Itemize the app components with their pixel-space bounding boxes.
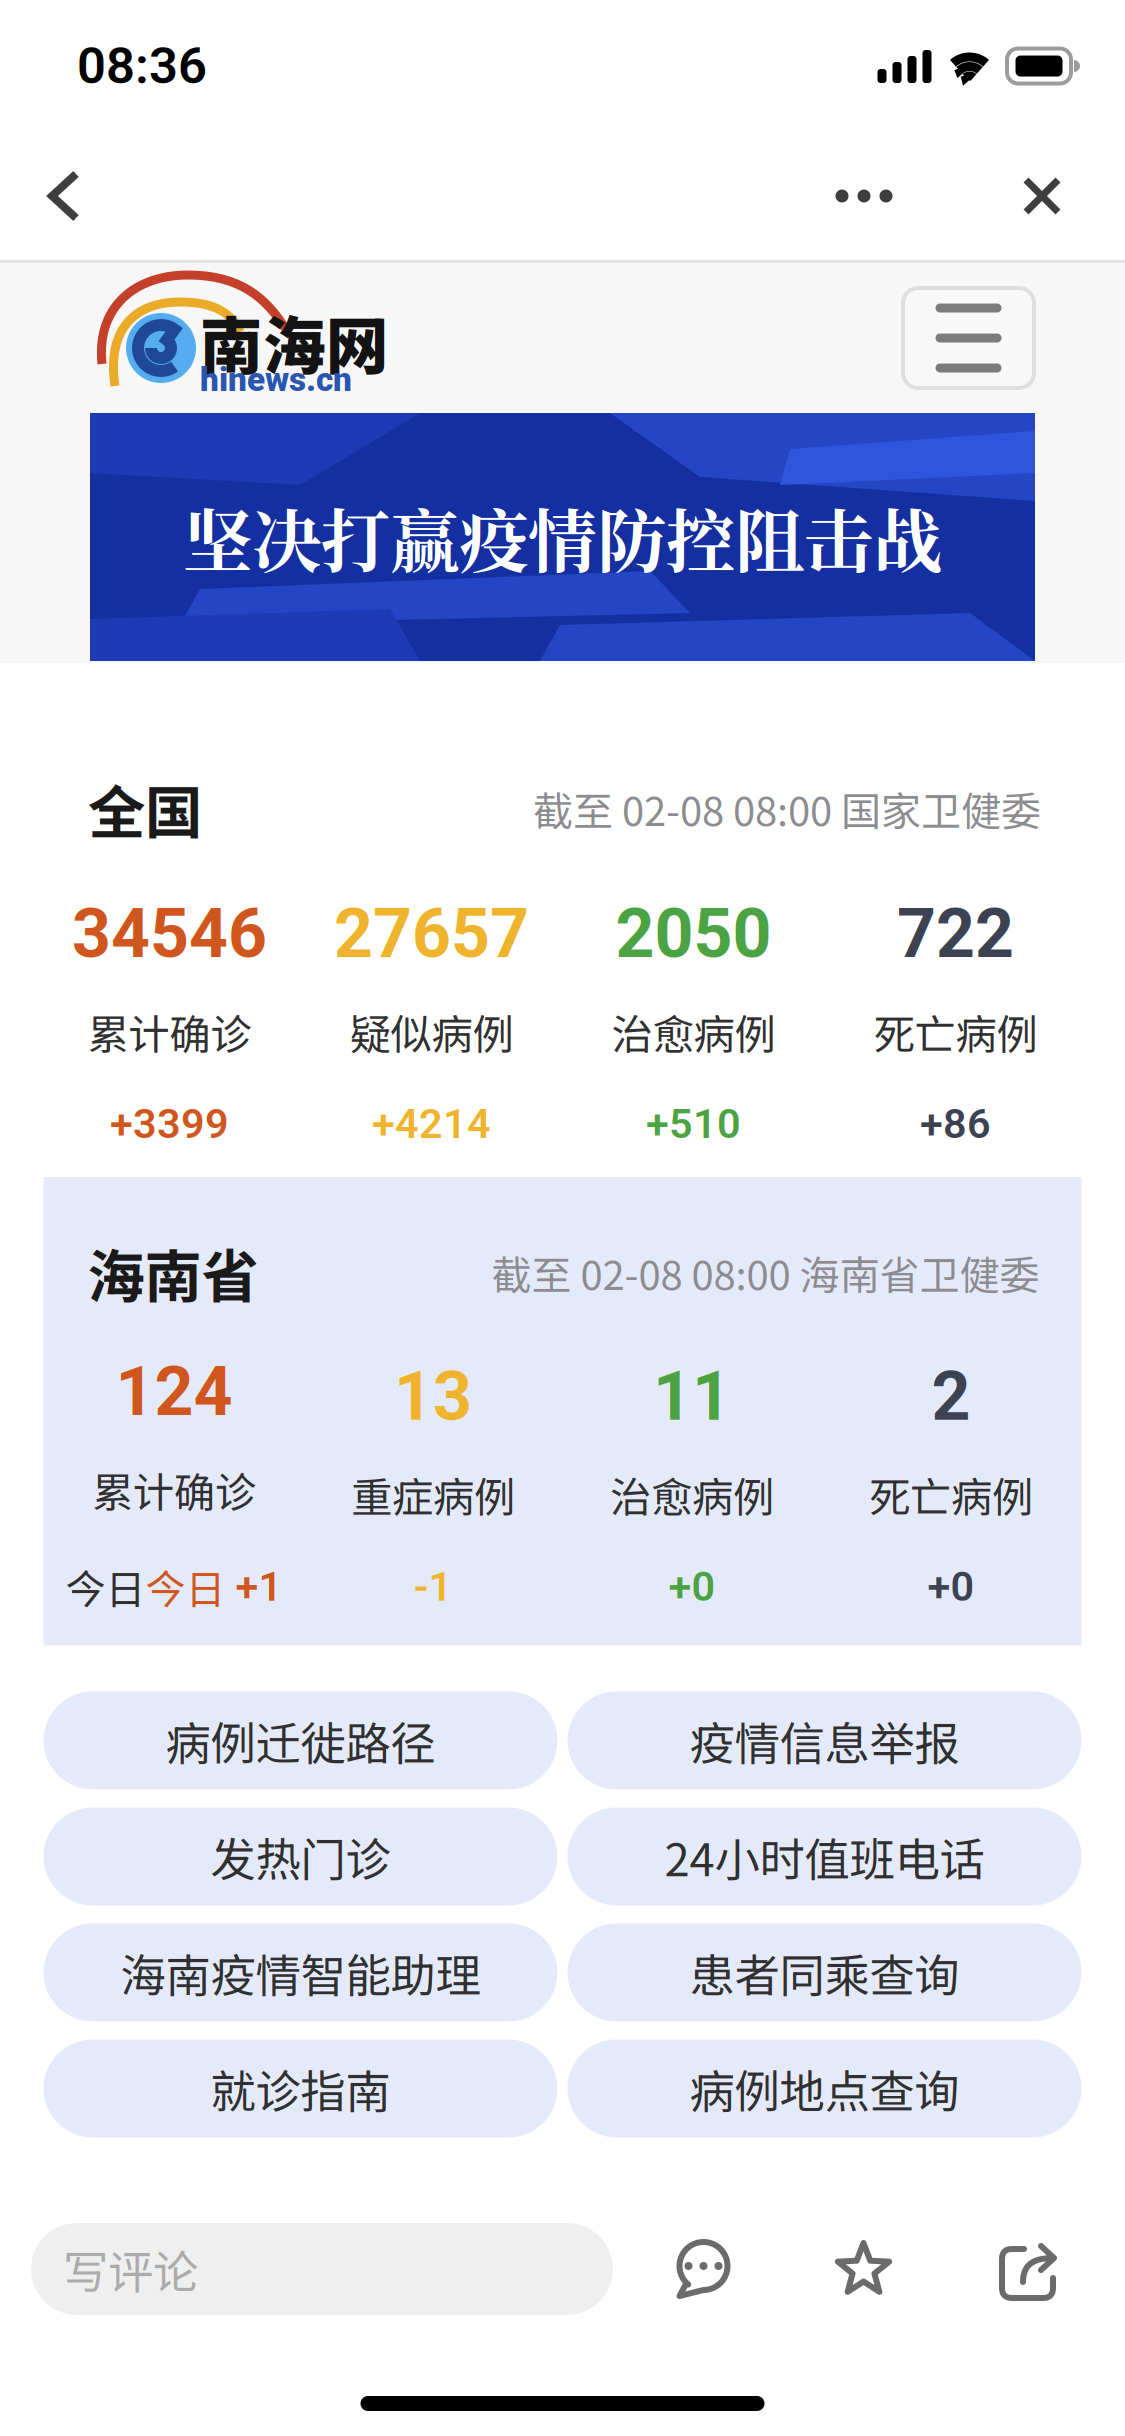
button[interactable]: Back	[16, 132, 112, 260]
button[interactable]: 病例地点查询	[567, 2039, 1081, 2137]
staticText: 截至 02-08 08:00 国家卫健委	[533, 779, 1041, 837]
staticText: 病例迁徙路径	[165, 1708, 435, 1773]
staticText: +510	[646, 1100, 741, 1148]
staticText: +0	[927, 1562, 974, 1611]
button[interactable]: 24小时值班电话	[567, 1807, 1081, 1905]
staticText: 写评论	[63, 2236, 198, 2302]
staticText: 重症病例	[351, 1464, 515, 1524]
button[interactable]: 发热门诊	[43, 1807, 557, 1905]
staticText: 2	[931, 1357, 970, 1436]
staticText: hinews.cn	[200, 360, 352, 399]
staticText: 11	[653, 1357, 731, 1436]
staticText: 2050	[615, 894, 771, 974]
staticText: 累计确诊	[92, 1460, 256, 1520]
staticText: 27657	[334, 894, 529, 974]
staticText: 24小时值班电话	[664, 1824, 984, 1889]
button[interactable]: 病例迁徙路径	[43, 1691, 557, 1789]
staticText: +1	[225, 1562, 282, 1611]
button[interactable]: More	[805, 132, 923, 260]
button[interactable]: Favorite	[821, 2223, 907, 2315]
staticText: +86	[920, 1100, 991, 1148]
staticText: +4214	[372, 1100, 491, 1148]
button[interactable]: Menu	[903, 288, 1034, 388]
staticText: 08:36	[77, 36, 207, 96]
staticText: 海南省	[87, 1231, 258, 1314]
staticText: 124	[115, 1352, 232, 1432]
button[interactable]: 疫情信息举报	[567, 1691, 1081, 1789]
staticText: +0	[668, 1562, 715, 1611]
staticText: 死亡病例	[873, 1002, 1037, 1062]
button[interactable]: 海南疫情智能助理	[43, 1923, 557, 2021]
staticText: 南海网	[200, 296, 389, 387]
staticText: 治愈病例	[610, 1464, 774, 1524]
staticText: 截至 02-08 08:00 海南省卫健委	[491, 1243, 1039, 1301]
staticText: 13	[394, 1357, 472, 1436]
staticText: 疫情信息举报	[689, 1708, 959, 1773]
staticText: 34546	[72, 894, 267, 974]
staticText: 患者同乘查询	[689, 1940, 959, 2005]
staticText: 今日	[65, 1557, 145, 1615]
button[interactable]: Close	[997, 132, 1087, 260]
staticText: 病例地点查询	[689, 2056, 959, 2121]
staticText: 累计确诊	[87, 1002, 251, 1062]
staticText: 就诊指南	[210, 2056, 390, 2121]
button[interactable]: 写评论	[31, 2223, 613, 2315]
button[interactable]: 就诊指南	[43, 2039, 557, 2137]
staticText: 死亡病例	[869, 1464, 1033, 1524]
button[interactable]: 患者同乘查询	[567, 1923, 1081, 2021]
staticText: 治愈病例	[611, 1002, 775, 1062]
staticText: 发热门诊	[210, 1824, 390, 1889]
staticText: -1	[413, 1562, 452, 1611]
staticText: 722	[897, 894, 1014, 974]
button[interactable]: Share	[985, 2223, 1071, 2315]
staticText: 权威发布｜海南省新型冠状病毒感染	[84, 2196, 772, 2258]
staticText: 疑似病例	[349, 1002, 513, 1062]
staticText: 坚决打赢疫情防控阻击战	[183, 487, 942, 587]
staticText: +3399	[110, 1100, 229, 1148]
staticText: 海南疫情智能助理	[120, 1940, 480, 2005]
button[interactable]: Comments	[659, 2223, 745, 2315]
staticText: 全国	[88, 767, 202, 850]
staticText: 今日	[145, 1557, 225, 1615]
